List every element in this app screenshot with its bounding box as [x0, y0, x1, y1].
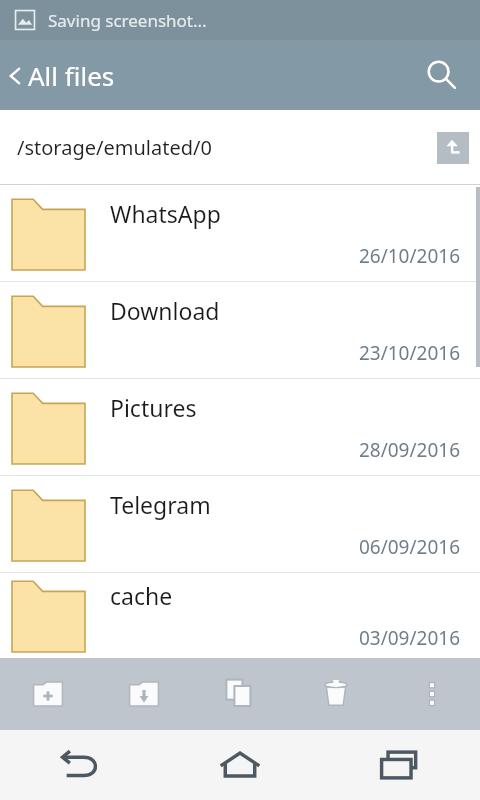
staticText: WhatsApp — [110, 198, 221, 229]
staticText: Pictures — [110, 392, 197, 423]
button[interactable]: Download — [0, 282, 480, 378]
staticText: 03/09/2016 — [110, 625, 460, 651]
button[interactable]: Delete — [288, 658, 384, 730]
button[interactable]: Pictures — [0, 379, 480, 475]
button[interactable]: Home — [160, 730, 320, 800]
button[interactable]: New folder — [0, 658, 96, 730]
button[interactable]: WhatsApp — [0, 185, 480, 281]
button[interactable]: Search — [418, 51, 466, 99]
button[interactable]: More options — [384, 658, 480, 730]
staticText: 06/09/2016 — [110, 534, 460, 560]
staticText: cache — [110, 580, 173, 611]
staticText: All files — [28, 58, 115, 93]
button[interactable]: Up one level — [437, 132, 469, 164]
staticText: Download — [110, 295, 220, 326]
button[interactable]: Back — [0, 730, 160, 800]
button[interactable]: Telegram — [0, 476, 480, 572]
staticText: /storage/emulated/0 — [17, 134, 212, 161]
staticText: 23/10/2016 — [110, 340, 460, 366]
button[interactable]: Copy — [192, 658, 288, 730]
button[interactable]: Move — [96, 658, 192, 730]
button[interactable]: Recents — [320, 730, 480, 800]
staticText: Saving screenshot... — [48, 9, 207, 32]
button[interactable]: All files — [0, 52, 127, 99]
staticText: Telegram — [110, 489, 211, 520]
button[interactable]: cache — [0, 573, 480, 658]
staticText: 26/10/2016 — [110, 243, 460, 269]
staticText: 28/09/2016 — [110, 437, 460, 463]
